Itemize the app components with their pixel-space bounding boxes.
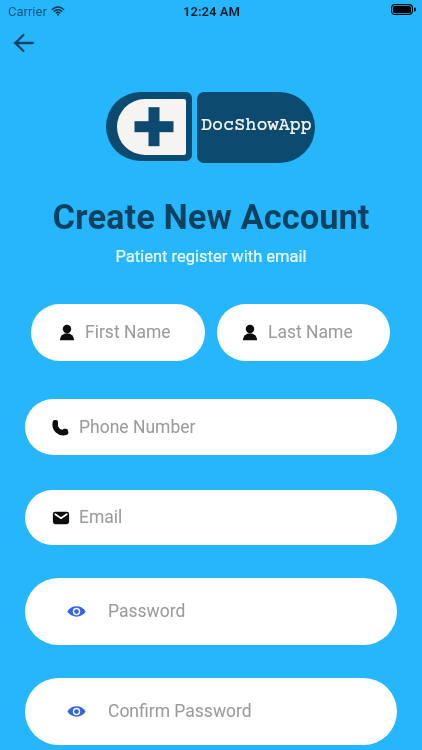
staticText: DocShowApp (201, 116, 312, 137)
button[interactable]: Password (25, 578, 397, 645)
button[interactable]: Back (5, 24, 43, 62)
button[interactable]: Email (25, 490, 397, 545)
staticText: 12:24 AM (183, 4, 240, 19)
staticText: First Name (85, 322, 171, 343)
staticText: Last Name (268, 322, 353, 343)
staticText: Email (79, 507, 123, 528)
staticText: Create New Account (0, 197, 422, 237)
button[interactable]: Confirm Password (25, 678, 397, 745)
button[interactable]: First Name (31, 304, 205, 361)
staticText: Carrier (8, 4, 47, 19)
staticText: Password (108, 601, 186, 622)
staticText: Patient register with email (0, 247, 422, 266)
staticText: Confirm Password (108, 701, 252, 722)
button[interactable]: Last Name (217, 304, 390, 361)
staticText: Phone Number (79, 417, 196, 438)
button[interactable]: Phone Number (25, 399, 397, 455)
